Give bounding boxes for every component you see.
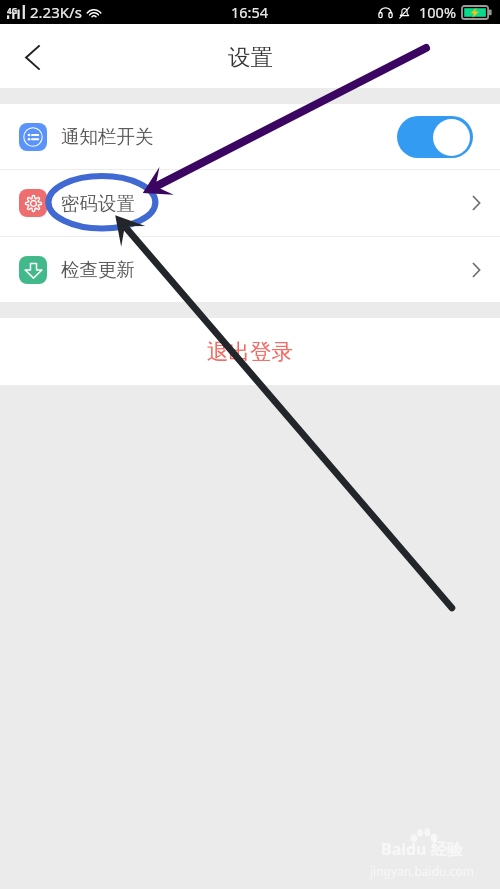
staticText: 退出登录 (207, 338, 293, 365)
button[interactable]: 退出登录 (0, 318, 500, 385)
button[interactable]: 返回 (0, 24, 62, 88)
staticText: 密码设置 (61, 192, 135, 215)
staticText: 16:54 (231, 2, 269, 22)
staticText: 4G (7, 5, 18, 16)
staticText: Baidu 经验 (381, 838, 463, 860)
staticText: 检查更新 (61, 258, 135, 281)
staticText: jingyan.baidu.com (370, 863, 474, 879)
staticText: 通知栏开关 (61, 125, 154, 148)
staticText: 设置 (228, 43, 273, 71)
button[interactable]: 通知栏开关 (397, 116, 473, 158)
staticText: 100% (419, 2, 456, 22)
button[interactable]: 检查更新 (0, 237, 500, 302)
button[interactable]: 密码设置 (0, 170, 500, 236)
staticText: 2.23K/s (30, 2, 82, 22)
button[interactable]: 通知栏开关 (0, 104, 500, 169)
